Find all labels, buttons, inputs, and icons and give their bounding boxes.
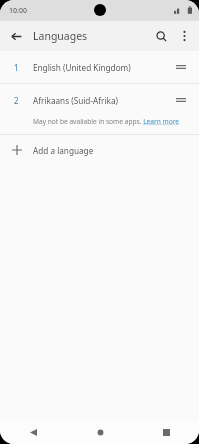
button[interactable]: Search	[149, 24, 173, 48]
staticText: May not be available in some apps. Learn…	[33, 117, 179, 126]
other: Reorder	[171, 57, 191, 77]
staticText: Afrikaans (Suid-Afrika)	[33, 95, 171, 106]
button[interactable]: Add a language	[0, 135, 199, 165]
staticText: English (United Kingdom)	[33, 62, 171, 73]
button[interactable]: 1	[0, 51, 199, 83]
staticText: 1	[14, 62, 19, 73]
button[interactable]: Home	[67, 420, 133, 444]
button[interactable]: 2	[0, 84, 199, 116]
button[interactable]: Back	[0, 420, 67, 444]
staticText: 2	[14, 95, 19, 106]
other: Reorder	[171, 90, 191, 110]
staticText: 10:00	[9, 6, 27, 16]
button[interactable]: Back	[5, 25, 27, 47]
button[interactable]: Recent apps	[133, 420, 199, 444]
staticText: Add a language	[33, 145, 94, 156]
button[interactable]: More options	[173, 25, 195, 47]
staticText: Languages	[33, 29, 88, 43]
